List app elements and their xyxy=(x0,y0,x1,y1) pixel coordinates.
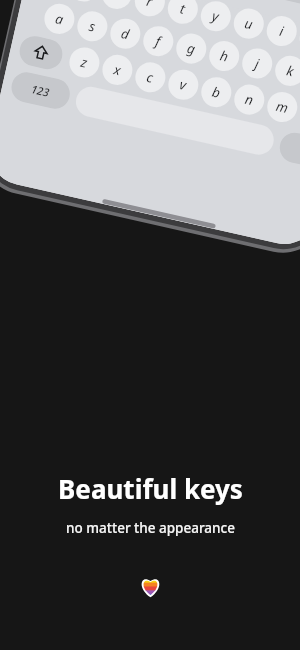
button[interactable]: Rainbow heart logo xyxy=(139,575,162,598)
staticText: Beautiful keys xyxy=(58,471,243,506)
staticText: no matter the appearance xyxy=(66,519,235,537)
